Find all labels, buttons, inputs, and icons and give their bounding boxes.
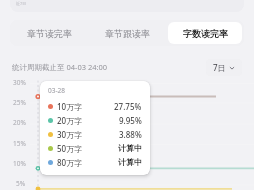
staticText: 03-28 (48, 86, 65, 95)
staticText: 章节读完率 (27, 28, 72, 39)
staticText: 30% (13, 78, 26, 87)
staticText: 5% (16, 179, 26, 188)
staticText: 章节跟读率 (105, 28, 150, 39)
staticText: 20万字 (57, 115, 83, 126)
button[interactable]: 7日 (206, 59, 242, 76)
staticText: 字数读完率 (183, 28, 228, 39)
staticText: 15% (13, 139, 26, 148)
staticText: 计算中 (118, 143, 142, 153)
staticText: 近7日 (16, 1, 27, 6)
button[interactable]: 章节跟读率 (88, 20, 166, 46)
button[interactable]: 03-28 (40, 81, 150, 175)
staticText: 7日 (213, 62, 226, 73)
staticText: 10万字 (57, 101, 83, 112)
staticText: 27.75% (114, 101, 142, 112)
staticText: 25% (13, 98, 26, 107)
staticText: 20% (13, 118, 26, 127)
staticText: 统计周期截止至 04-03 24:00 (12, 62, 108, 72)
staticText: 80万字 (57, 157, 83, 168)
staticText: 30万字 (57, 129, 83, 140)
button[interactable]: 章节读完率 (10, 20, 88, 46)
staticText: 计算中 (118, 157, 142, 167)
staticText: 9.95% (119, 115, 142, 126)
staticText: 50万字 (57, 143, 83, 154)
staticText: 3.88% (119, 129, 142, 140)
staticText: 10% (13, 159, 26, 168)
button[interactable]: 字数读完率 (168, 22, 242, 44)
